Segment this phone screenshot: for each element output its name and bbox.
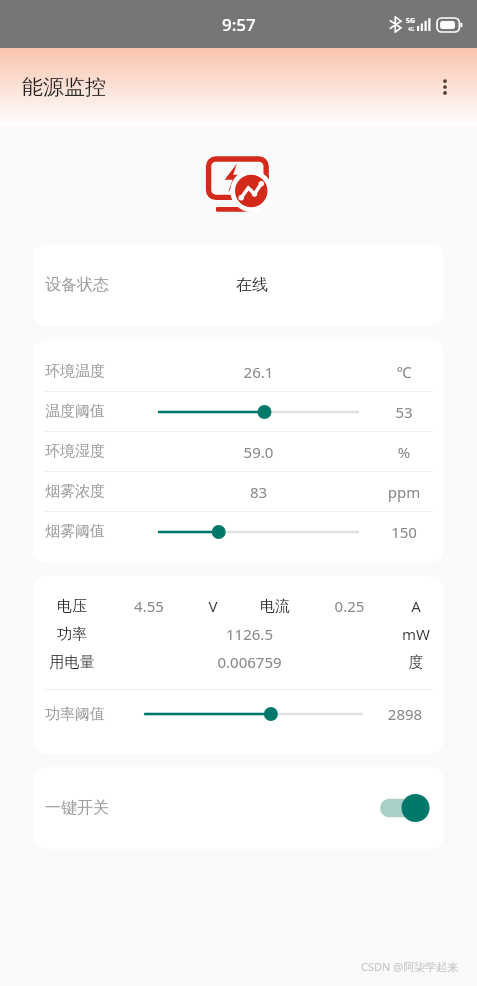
button[interactable]: 一键开关 <box>33 767 444 849</box>
staticText: 功率 <box>33 625 111 644</box>
staticText: 0.006759 <box>111 652 388 672</box>
button[interactable]: 设备状态 <box>33 244 444 326</box>
staticText: 温度阈值 <box>45 402 145 421</box>
staticText: 电压 <box>33 597 111 616</box>
button[interactable]: 用电量 <box>33 648 444 676</box>
staticText: 烟雾浓度 <box>45 482 145 501</box>
staticText: 26.1 <box>145 362 372 382</box>
staticText: A <box>388 596 444 616</box>
staticText: 一键开关 <box>45 798 109 818</box>
button[interactable]: 功率阈值 <box>33 690 444 738</box>
staticText: 4G <box>408 26 415 33</box>
staticText: 电流 <box>239 597 311 616</box>
button[interactable]: 环境温度 <box>33 352 444 391</box>
staticText: 设备状态 <box>45 275 109 295</box>
staticText: 用电量 <box>33 653 111 672</box>
staticText: 能源监控 <box>22 74 106 100</box>
staticText: 5G <box>406 16 416 26</box>
staticText: 0.25 <box>311 596 388 616</box>
staticText: 9:57 <box>222 13 256 36</box>
button[interactable]: More options <box>421 63 469 111</box>
staticText: 1126.5 <box>111 624 388 644</box>
staticText: 2898 <box>372 704 438 724</box>
staticText: V <box>187 596 239 616</box>
staticText: mW <box>388 624 444 644</box>
button[interactable]: 温度阈值 <box>33 392 444 431</box>
staticText: CSDN @阿柒学起来 <box>361 959 459 974</box>
button[interactable]: 烟雾浓度 <box>33 472 444 511</box>
staticText: 4.55 <box>111 596 187 616</box>
staticText: 53 <box>372 402 436 422</box>
staticText: 在线 <box>236 275 268 295</box>
button[interactable]: Master switch, on <box>380 794 428 822</box>
staticText: 150 <box>372 522 436 542</box>
staticText: 度 <box>388 653 444 672</box>
staticText: 83 <box>145 482 372 502</box>
staticText: ℃ <box>372 362 436 382</box>
staticText: ppm <box>372 482 436 502</box>
staticText: 环境湿度 <box>45 442 145 461</box>
staticText: 59.0 <box>145 442 372 462</box>
staticText: 功率阈值 <box>45 705 133 724</box>
button[interactable]: 烟雾阈值 <box>33 512 444 551</box>
button[interactable]: 电压 <box>33 592 444 620</box>
button[interactable]: 功率 <box>33 620 444 648</box>
staticText: % <box>372 442 436 462</box>
staticText: 环境温度 <box>45 362 145 381</box>
button[interactable]: 环境湿度 <box>33 432 444 471</box>
staticText: 烟雾阈值 <box>45 522 145 541</box>
